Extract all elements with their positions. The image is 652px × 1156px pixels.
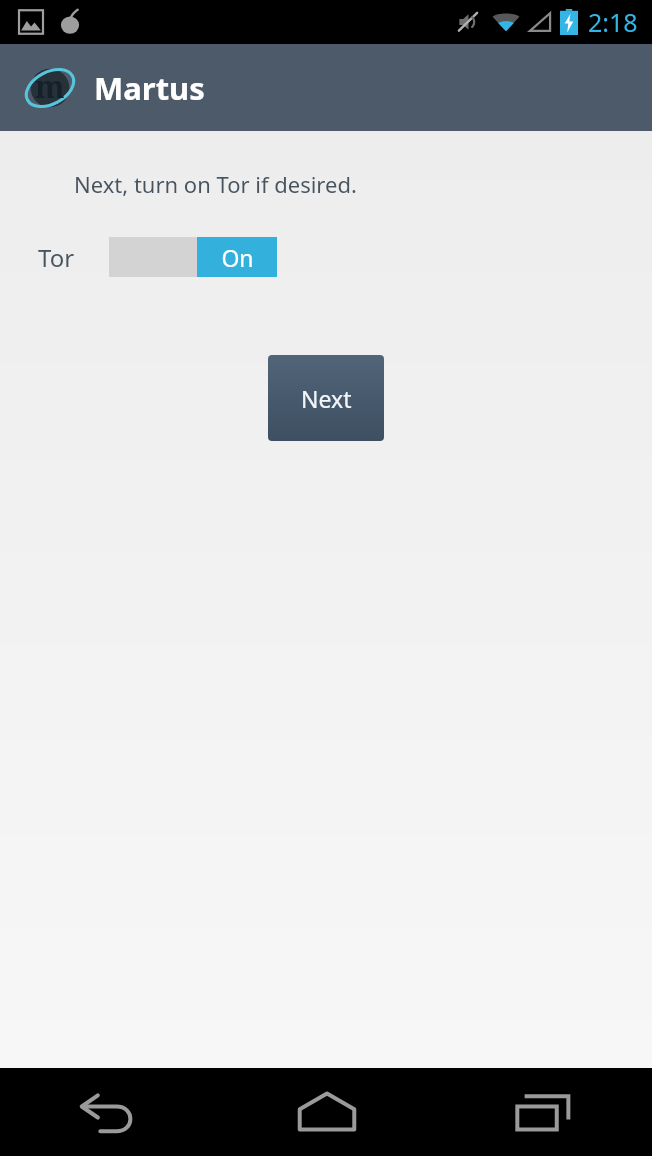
staticText: Next <box>301 383 352 414</box>
button[interactable]: Tor on <box>109 237 277 277</box>
staticText: m <box>35 66 65 107</box>
staticText: 2:18 <box>588 5 638 39</box>
staticText: Tor <box>38 241 75 274</box>
button[interactable]: Recent apps <box>435 1068 652 1156</box>
staticText: On <box>221 242 254 273</box>
button[interactable]: Next <box>268 355 384 441</box>
staticText: Next, turn on Tor if desired. <box>74 169 357 199</box>
button[interactable]: Home <box>218 1068 435 1156</box>
button[interactable]: Back <box>0 1068 218 1156</box>
staticText: Martus <box>94 67 205 109</box>
